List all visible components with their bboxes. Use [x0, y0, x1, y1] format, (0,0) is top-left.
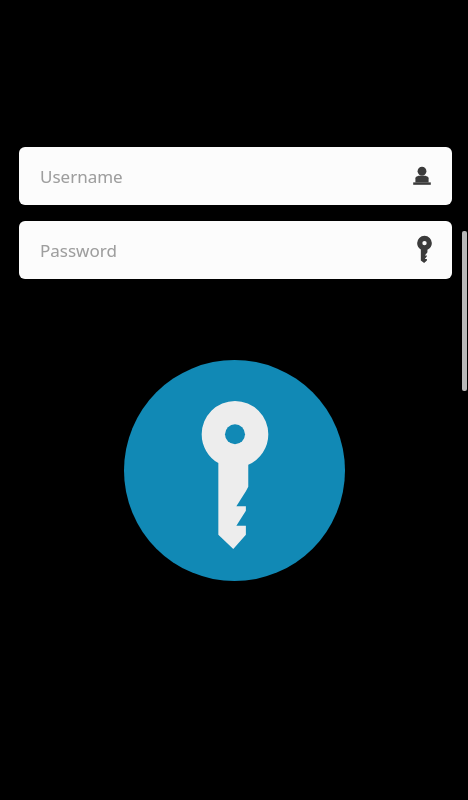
other: Password	[417, 237, 432, 263]
other: Username	[411, 165, 433, 187]
button[interactable]: Username	[19, 147, 452, 205]
staticText: Password	[40, 239, 117, 262]
staticText: Username	[40, 165, 123, 188]
button[interactable]: Password	[19, 221, 452, 279]
button[interactable]: Log in	[124, 360, 345, 581]
